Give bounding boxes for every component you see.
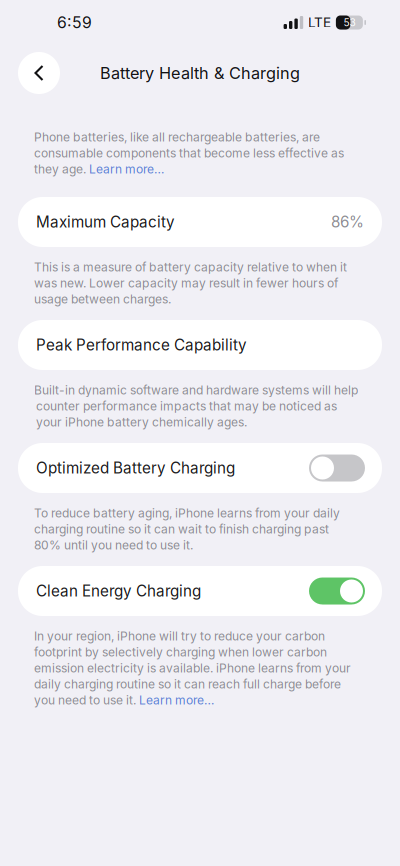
- staticText: you need to use it.: [34, 693, 139, 707]
- button[interactable]: Maximum Capacity: [18, 197, 382, 247]
- staticText: Optimized Battery Charging: [36, 459, 235, 477]
- staticText: LTE: [308, 14, 331, 31]
- staticText: Peak Performance Capability: [36, 336, 247, 354]
- staticText: was new. Lower capacity may result in fe…: [34, 276, 338, 290]
- staticText: 53: [343, 16, 355, 29]
- staticText: daily charging routine so it can reach f…: [34, 677, 341, 691]
- staticText: emission electricity is available. iPhon…: [34, 661, 351, 675]
- staticText: In your region, iPhone will try to reduc…: [34, 629, 325, 643]
- button[interactable]: Peak Performance Capability: [18, 320, 382, 370]
- staticText: Battery Health & Charging: [100, 63, 300, 83]
- button[interactable]: Clean Energy Charging: [18, 566, 382, 616]
- staticText: counter performance impacts that may be …: [36, 399, 337, 413]
- staticText: 6:59: [57, 13, 92, 32]
- staticText: Maximum Capacity: [36, 213, 175, 231]
- button[interactable]: Learn more…: [89, 162, 164, 176]
- staticText: To reduce battery aging, iPhone learns f…: [34, 506, 340, 520]
- staticText: consumable components that become less e…: [34, 146, 344, 160]
- staticText: 86%: [331, 213, 364, 231]
- staticText: they age.: [34, 162, 89, 176]
- button[interactable]: Back: [18, 52, 60, 94]
- staticText: usage between charges.: [34, 292, 171, 306]
- staticText: your iPhone battery chemically ages.: [36, 415, 247, 429]
- button[interactable]: Learn more…: [139, 693, 214, 707]
- staticText: Learn more…: [139, 693, 214, 707]
- button[interactable]: Optimized Battery Charging: [18, 443, 382, 493]
- staticText: charging routine so it can wait to finis…: [34, 522, 329, 536]
- staticText: 80% until you need to use it.: [34, 538, 193, 552]
- staticText: Phone batteries, like all rechargeable b…: [34, 130, 320, 144]
- staticText: Learn more…: [89, 162, 164, 176]
- staticText: footprint by selectively charging when l…: [34, 645, 327, 659]
- staticText: Built-in dynamic software and hardware s…: [34, 383, 358, 397]
- staticText: This is a measure of battery capacity re…: [34, 260, 347, 274]
- staticText: Clean Energy Charging: [36, 582, 201, 600]
